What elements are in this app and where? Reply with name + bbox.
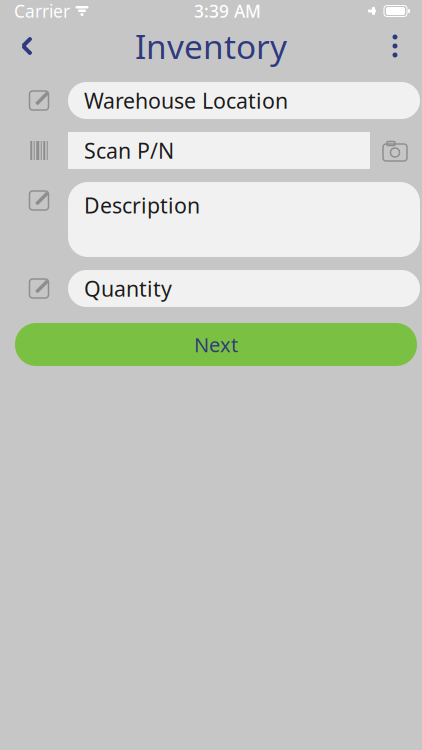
staticText: Scan P/N [84,136,174,165]
button[interactable]: More options [372,23,418,69]
staticText: 3:39 AM [194,0,261,22]
staticText: Quantity [84,274,172,303]
button[interactable]: Next [15,323,417,366]
staticText: Warehouse Location [84,86,288,115]
staticText: Carrier [14,0,70,22]
staticText: Inventory [135,24,287,68]
button[interactable]: Back [4,23,50,69]
staticText: Next [194,331,238,358]
button[interactable]: Scan barcode with camera [370,132,420,169]
staticText: Description [84,191,200,219]
